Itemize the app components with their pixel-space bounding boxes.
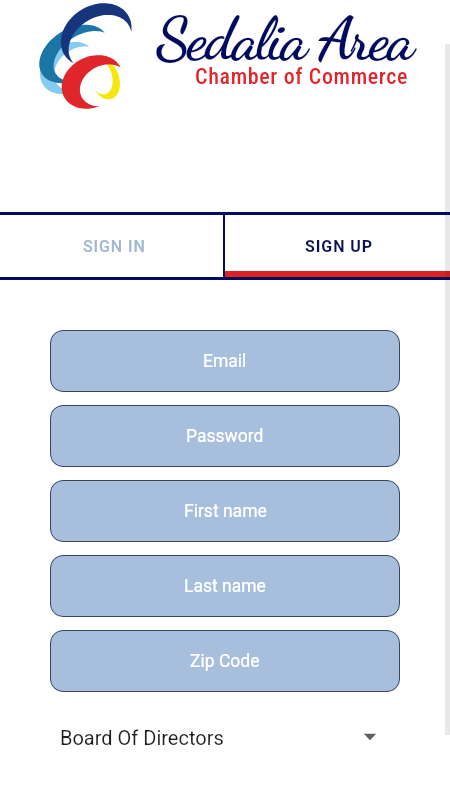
other: Expand dropdown bbox=[359, 726, 381, 748]
button[interactable]: First name bbox=[50, 480, 400, 542]
staticText: SIGN IN bbox=[83, 237, 146, 256]
button[interactable]: Password bbox=[50, 405, 400, 467]
staticText: Last name bbox=[184, 576, 266, 597]
staticText: Sedalia Area bbox=[156, 3, 412, 75]
other: Sedalia Area Chamber of Commerce logo bbox=[34, 3, 146, 115]
staticText: SIGN UP bbox=[305, 237, 373, 256]
staticText: Board Of Directors bbox=[60, 726, 224, 749]
staticText: First name bbox=[184, 501, 267, 522]
staticText: Email bbox=[203, 351, 247, 372]
button[interactable]: SIGN UP bbox=[225, 215, 450, 277]
staticText: Zip Code bbox=[190, 651, 260, 672]
staticText: Password bbox=[186, 426, 264, 447]
button[interactable]: SIGN IN bbox=[0, 215, 223, 277]
button[interactable]: Zip Code bbox=[50, 630, 400, 692]
button[interactable]: Email bbox=[50, 330, 400, 392]
button[interactable]: Last name bbox=[50, 555, 400, 617]
button[interactable]: Board Of Directors bbox=[50, 711, 400, 763]
staticText: Chamber of Commerce bbox=[195, 64, 409, 90]
